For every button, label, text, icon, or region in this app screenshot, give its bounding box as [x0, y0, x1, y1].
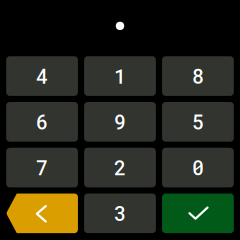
staticText: 3: [114, 200, 126, 226]
button[interactable]: 6: [6, 102, 78, 142]
button[interactable]: 3: [84, 193, 156, 233]
staticText: 7: [36, 154, 48, 181]
staticText: 4: [36, 63, 48, 89]
button[interactable]: 1: [84, 56, 156, 96]
staticText: 6: [36, 109, 48, 135]
button[interactable]: 0: [162, 148, 234, 187]
button[interactable]: 2: [84, 148, 156, 187]
staticText: 8: [192, 63, 204, 89]
button[interactable]: 4: [6, 56, 78, 96]
button[interactable]: 9: [84, 102, 156, 142]
button[interactable]: Delete: [6, 193, 78, 233]
staticText: 0: [192, 154, 204, 181]
button[interactable]: 8: [162, 56, 234, 96]
staticText: 2: [114, 154, 126, 181]
button[interactable]: 7: [6, 148, 78, 187]
staticText: 9: [114, 109, 126, 135]
button[interactable]: Confirm: [162, 193, 234, 233]
staticText: 1: [114, 63, 126, 89]
button[interactable]: 5: [162, 102, 234, 142]
staticText: 5: [192, 109, 204, 135]
